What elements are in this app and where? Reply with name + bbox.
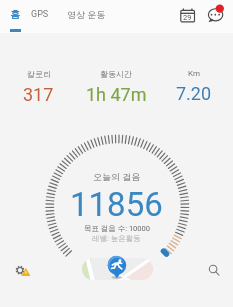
- staticText: 오늘의 걸음: [93, 171, 141, 182]
- button[interactable]: Settings: [13, 262, 33, 282]
- staticText: 칼로리: [27, 69, 51, 79]
- button[interactable]: Messages: [204, 2, 228, 26]
- staticText: 7.20: [176, 83, 212, 104]
- button[interactable]: 홈: [3, 0, 27, 33]
- button[interactable]: Calendar: [177, 4, 198, 25]
- button[interactable]: 활동시간: [77, 69, 155, 105]
- staticText: 1h 47m: [86, 84, 147, 105]
- button[interactable]: 칼로리: [0, 69, 77, 105]
- staticText: 목표 걸음 수: 10000: [84, 224, 150, 233]
- staticText: 홈: [10, 8, 20, 21]
- button[interactable]: 영상 운동: [60, 0, 112, 33]
- staticText: 영상 운동: [67, 9, 106, 20]
- staticText: 29: [183, 13, 192, 22]
- staticText: 11856: [70, 185, 163, 224]
- staticText: 317: [23, 84, 54, 105]
- button[interactable]: GPS: [28, 0, 52, 33]
- staticText: 활동시간: [100, 69, 132, 79]
- staticText: 레벨: 높은활동: [92, 234, 141, 243]
- staticText: GPS: [31, 9, 49, 20]
- button[interactable]: Km: [155, 69, 233, 104]
- button[interactable]: Search: [205, 262, 223, 280]
- button[interactable]: Start workout: [107, 254, 127, 280]
- staticText: Km: [188, 69, 200, 78]
- button[interactable]: Map: [82, 258, 153, 280]
